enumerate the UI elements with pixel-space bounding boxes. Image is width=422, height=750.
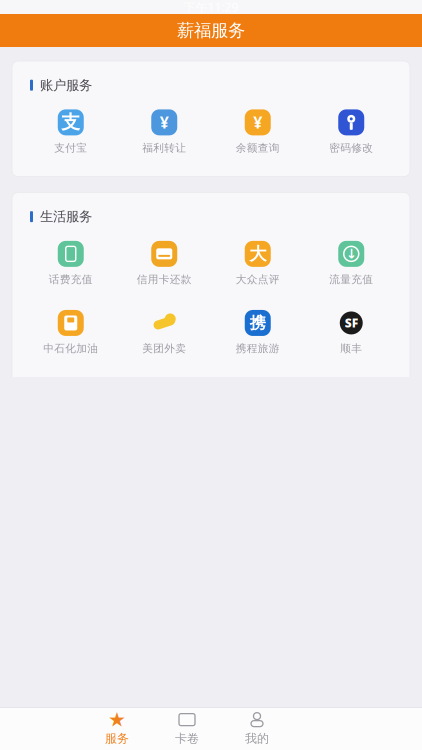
staticText: 我的 [245,731,269,746]
staticText: 卡卷 [175,731,199,746]
staticText: 生活服务 [40,208,92,225]
button[interactable]: ¥ [211,109,304,154]
staticText: ★ [108,708,126,731]
staticText: 信用卡还款 [137,273,192,286]
staticText: 大众点评 [236,273,280,286]
button[interactable]: 中石化加油 [24,310,117,355]
button[interactable]: 大 [211,241,304,286]
staticText: 福利转让 [142,141,186,154]
staticText: 大 [249,243,266,264]
button[interactable]: 我的 [226,708,288,750]
button[interactable]: 支 [24,109,117,154]
staticText: 密码修改 [329,141,373,154]
staticText: 携 [250,313,266,333]
staticText: 薪福服务 [177,20,245,41]
staticText: 携程旅游 [236,342,280,355]
staticText: 服务 [105,731,129,746]
staticText: 话费充值 [49,273,93,286]
staticText: ¥ [160,112,169,133]
button[interactable]: 密码修改 [304,109,398,154]
staticText: 顺丰 [340,342,362,355]
button[interactable]: 美团外卖 [117,310,211,355]
staticText: 流量充值 [329,273,373,286]
button[interactable]: 话费充值 [24,241,117,286]
staticText: SF [345,315,358,331]
button[interactable]: SF [304,310,398,355]
button[interactable]: 携 [211,310,304,355]
button[interactable]: ★ [86,708,148,750]
staticText: 支 [61,111,80,134]
staticText: ¥ [253,112,262,133]
staticText: 下午11:29 [183,0,238,15]
staticText: 中石化加油 [43,342,98,355]
button[interactable]: 信用卡还款 [117,241,211,286]
staticText: 账户服务 [40,77,92,93]
button[interactable]: ↓ [304,241,398,286]
staticText: ↓ [346,246,357,261]
button[interactable]: 卡卷 [156,708,218,750]
button[interactable]: ¥ [117,109,211,154]
staticText: 美团外卖 [142,342,186,355]
staticText: 余额查询 [236,141,280,154]
staticText: 支付宝 [54,141,87,154]
